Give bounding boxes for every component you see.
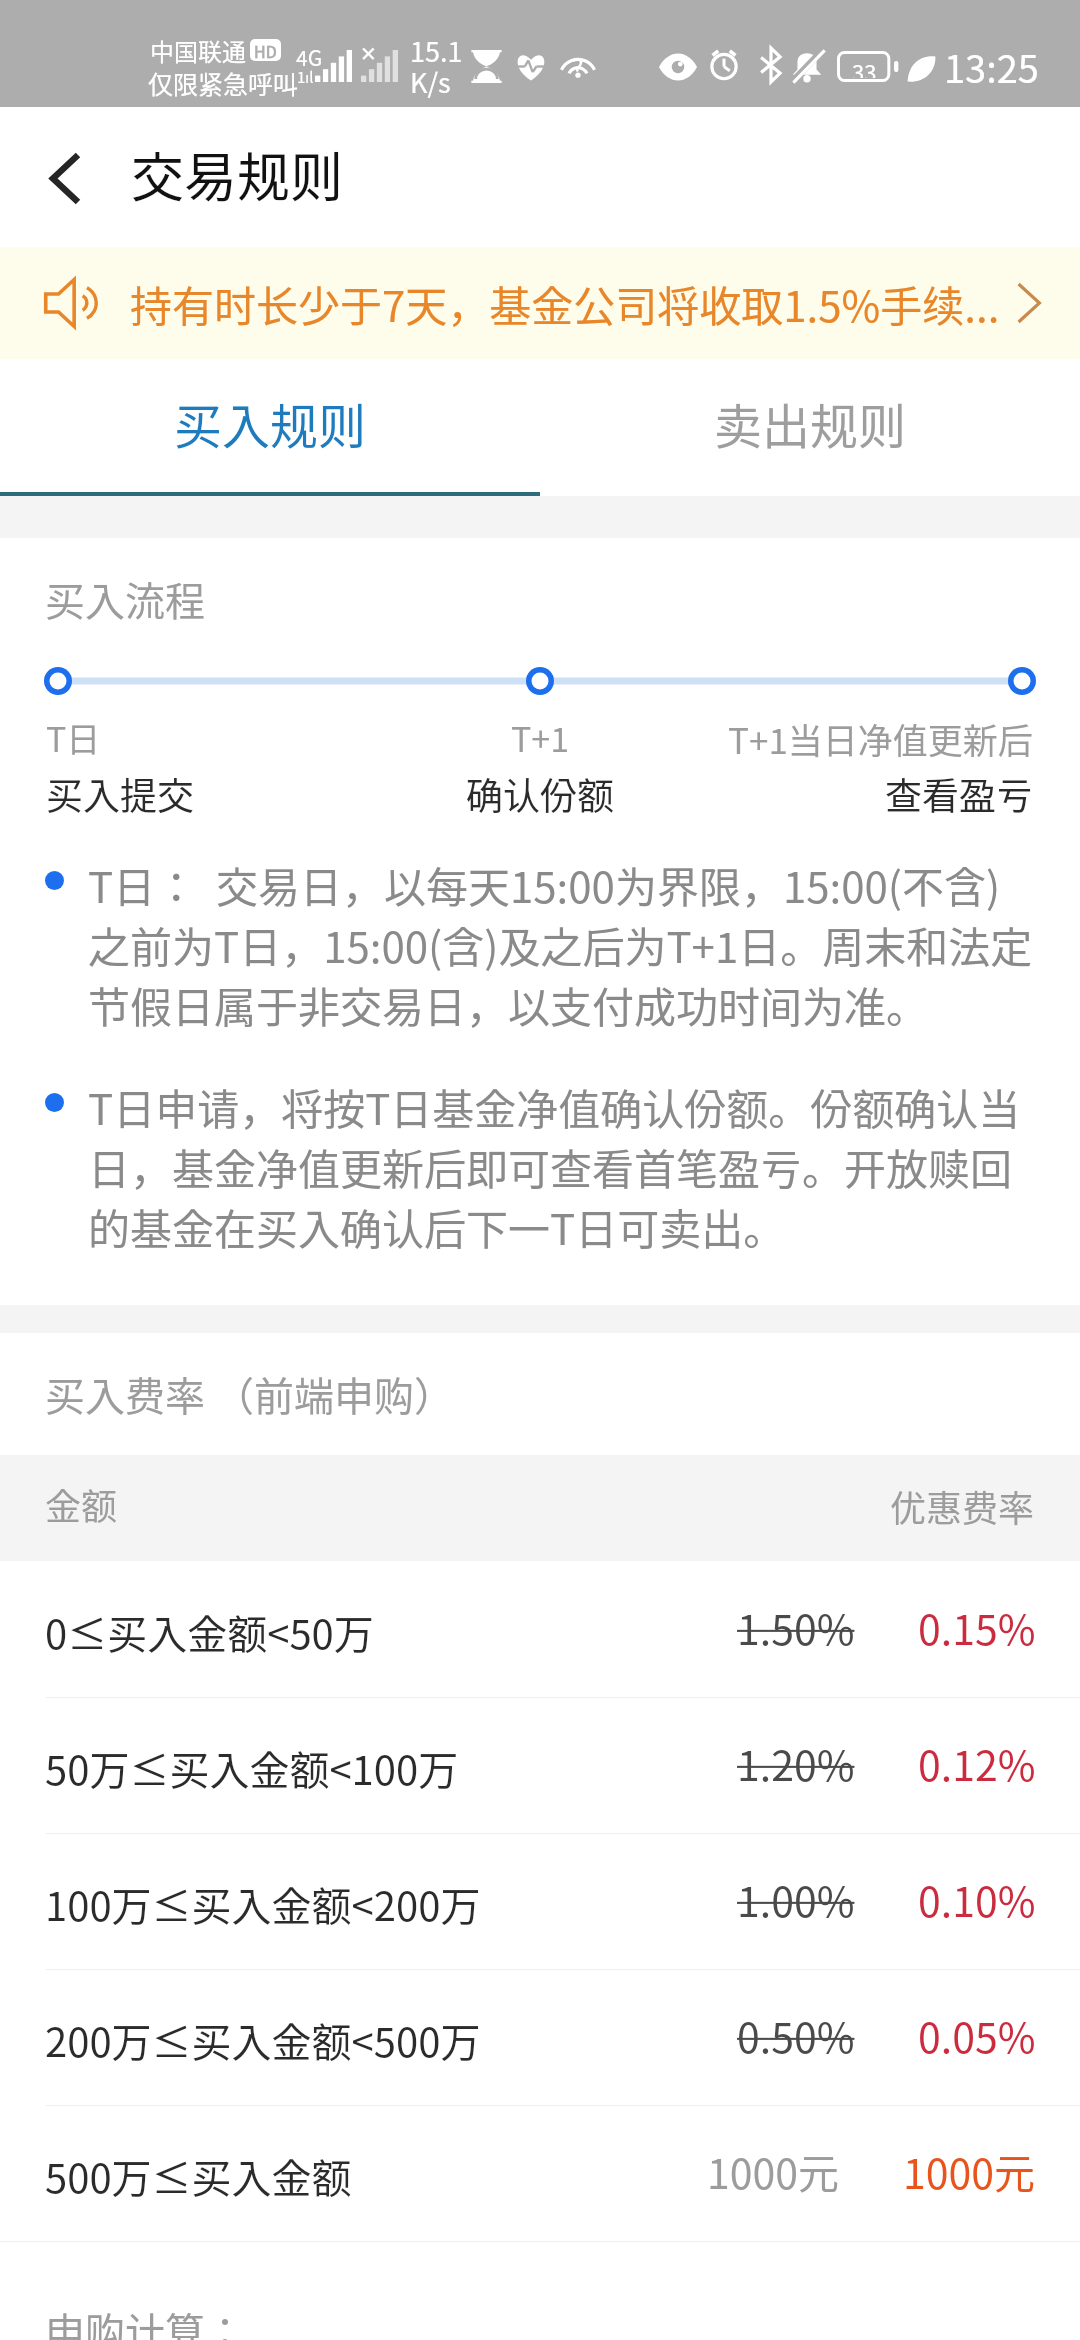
staticText: 0.15% <box>918 1597 1036 1656</box>
staticText: 申购计算： <box>45 2301 245 2340</box>
staticText: HD <box>254 39 277 61</box>
staticText: 买入规则 <box>174 388 367 458</box>
staticText: 1.20% <box>737 1733 855 1792</box>
staticText: 仅限紧急呼叫 <box>148 65 299 101</box>
staticText: T+1当日净值更新后 <box>728 713 1033 764</box>
staticText: 买入流程 <box>45 570 205 628</box>
staticText: 中国联通 <box>150 33 246 68</box>
staticText: ✕ <box>360 42 377 65</box>
button[interactable]: 买入规则 <box>0 359 540 496</box>
staticText: 买入费率 （前端申购） <box>45 1365 454 1423</box>
staticText: ? <box>572 49 584 79</box>
staticText: 50万≤买入金额<100万 <box>45 1739 459 1797</box>
staticText: 1ıl <box>297 66 314 88</box>
staticText: 13:25 <box>944 39 1039 94</box>
staticText: 15.1 <box>410 31 463 70</box>
staticText: 500万≤买入金额 <box>45 2147 352 2205</box>
button[interactable]: 0≤买入金额<50万 <box>0 1561 1080 1697</box>
staticText: 0.05% <box>918 2005 1036 2064</box>
staticText: 0.12% <box>918 1733 1036 1792</box>
staticText: T日 <box>46 713 101 762</box>
button[interactable]: Back <box>0 107 130 247</box>
staticText: 优惠费率 <box>890 1480 1035 1532</box>
staticText: 金额 <box>45 1478 118 1530</box>
staticText: 0≤买入金额<50万 <box>45 1603 374 1661</box>
staticText: 0.50% <box>737 2005 855 2064</box>
staticText: 1000元 <box>707 2141 840 2200</box>
staticText: 查看盈亏 <box>885 767 1033 821</box>
staticText: T日： 交易日，以每天15:00为界限，15:00(不含) 之前为T日，15:0… <box>88 854 1048 1035</box>
staticText: 200万≤买入金额<500万 <box>45 2011 481 2069</box>
button[interactable]: 200万≤买入金额<500万 <box>0 1969 1080 2105</box>
button[interactable]: 50万≤买入金额<100万 <box>0 1697 1080 1833</box>
staticText: T+1 <box>511 713 570 762</box>
staticText: 33 <box>852 55 877 78</box>
staticText: K/s <box>410 62 451 101</box>
staticText: 确认份额 <box>466 767 614 821</box>
staticText: 买入提交 <box>46 767 194 821</box>
staticText: 持有时长少于7天，基金公司将收取1.5%手续... <box>130 273 1000 334</box>
staticText: 交易规则 <box>131 136 343 213</box>
staticText: 100万≤买入金额<200万 <box>45 1875 481 1933</box>
staticText: 1.50% <box>737 1597 855 1656</box>
button[interactable]: 持有时长少于7天，基金公司将收取1.5%手续... <box>0 247 1080 359</box>
staticText: 1000元 <box>903 2141 1036 2200</box>
staticText: 1.00% <box>737 1869 855 1928</box>
staticText: T日申请，将按T日基金净值确认份额。份额确认当 日，基金净值更新后即可查看首笔盈… <box>88 1076 1048 1257</box>
button[interactable]: 100万≤买入金额<200万 <box>0 1833 1080 1969</box>
staticText: 4G <box>296 42 323 72</box>
button[interactable]: 卖出规则 <box>540 359 1080 496</box>
staticText: 卖出规则 <box>714 388 907 458</box>
staticText: 0.10% <box>918 1869 1036 1928</box>
button[interactable]: 500万≤买入金额 <box>0 2105 1080 2241</box>
